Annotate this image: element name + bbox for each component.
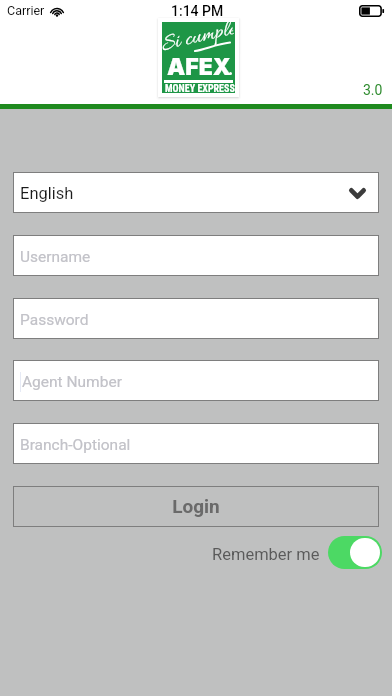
staticText: Username xyxy=(20,248,91,266)
staticText: MONEY EXPRESS xyxy=(165,83,235,93)
staticText: English xyxy=(20,184,74,203)
staticText: Remember me xyxy=(212,545,320,564)
staticText: Branch-Optional xyxy=(20,436,131,454)
staticText: AFEX xyxy=(167,53,231,81)
button[interactable]: English xyxy=(13,172,379,213)
button[interactable]: Username xyxy=(13,235,379,276)
staticText: Si cumple xyxy=(162,22,235,61)
staticText: Agent Number xyxy=(22,373,122,391)
button[interactable]: Remember me toggle xyxy=(328,536,382,569)
button[interactable]: Login xyxy=(13,486,379,527)
button[interactable]: Agent Number xyxy=(13,360,379,401)
button[interactable]: Password xyxy=(13,298,379,339)
staticText: Login xyxy=(172,495,220,517)
staticText: Password xyxy=(20,311,89,329)
staticText: 1:14 PM xyxy=(171,3,224,19)
button[interactable]: Branch-Optional xyxy=(13,423,379,464)
staticText: Carrier xyxy=(7,3,45,18)
staticText: 3.0 xyxy=(363,82,383,98)
